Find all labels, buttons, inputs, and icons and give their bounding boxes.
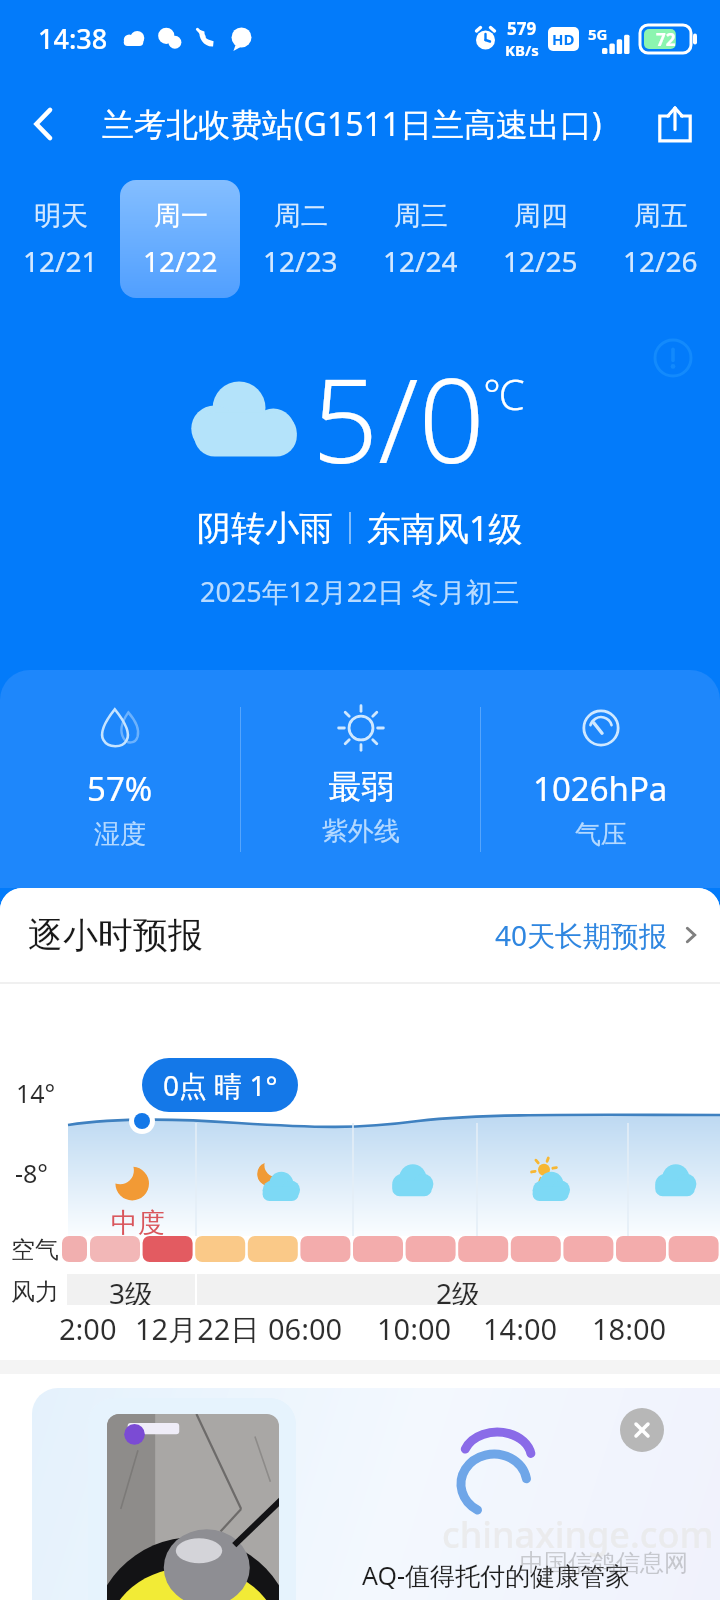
staticText: 14° bbox=[16, 1076, 56, 1110]
staticText: 东南风1级 bbox=[367, 505, 523, 551]
staticText: 明天 bbox=[34, 199, 88, 233]
staticText: 12月22日 bbox=[135, 1309, 260, 1349]
staticText: 兰考北收费站(G1511日兰高速出口) bbox=[102, 102, 602, 146]
staticText: 湿度 bbox=[94, 818, 146, 851]
staticText: 阴转小雨 bbox=[197, 507, 333, 550]
button[interactable]: Back bbox=[12, 92, 76, 156]
button[interactable]: 57% bbox=[0, 670, 240, 888]
staticText: 2级 bbox=[436, 1274, 481, 1305]
staticText: 中度 bbox=[111, 1206, 165, 1240]
button[interactable]: Share bbox=[644, 93, 706, 155]
staticText: 5/0 bbox=[312, 339, 485, 497]
button[interactable]: 周四 bbox=[480, 180, 600, 298]
button[interactable]: 周二 bbox=[240, 180, 360, 298]
staticText: 14:00 bbox=[483, 1309, 558, 1348]
staticText: 14:38 bbox=[38, 20, 108, 57]
button[interactable]: 周一 bbox=[120, 180, 240, 298]
staticText: 72 bbox=[656, 28, 676, 51]
button[interactable]: Close ad bbox=[620, 1408, 664, 1452]
staticText: 中国信鸽信息网 bbox=[520, 1548, 688, 1578]
staticText: 1026hPa bbox=[533, 766, 668, 811]
staticText: 579 bbox=[507, 17, 537, 40]
staticText: 06:00 bbox=[268, 1309, 343, 1348]
button[interactable]: 最弱 bbox=[241, 670, 480, 888]
button[interactable]: 周三 bbox=[360, 180, 480, 298]
staticText: 12/24 bbox=[383, 242, 458, 280]
staticText: chinaxinge.com bbox=[442, 1510, 714, 1559]
staticText: ℃ bbox=[483, 365, 525, 422]
staticText: 周三 bbox=[394, 199, 448, 233]
staticText: KB/s bbox=[505, 40, 539, 60]
button[interactable]: 0点 晴 1° bbox=[142, 1058, 298, 1112]
staticText: 逐小时预报 bbox=[28, 913, 203, 957]
staticText: 12/23 bbox=[263, 242, 338, 280]
staticText: 周四 bbox=[514, 199, 568, 233]
staticText: 2:00 bbox=[59, 1309, 117, 1348]
staticText: 0点 晴 1° bbox=[163, 1066, 278, 1104]
staticText: 周五 bbox=[634, 199, 688, 233]
staticText: 空气 bbox=[11, 1235, 59, 1265]
staticText: 40天长期预报 bbox=[495, 916, 668, 954]
button[interactable]: 周五 bbox=[600, 180, 720, 298]
staticText: 周二 bbox=[274, 199, 328, 233]
staticText: -8° bbox=[15, 1156, 49, 1190]
staticText: 2025年12月22日 冬月初三 bbox=[200, 573, 520, 610]
button[interactable]: 40天长期预报 bbox=[495, 916, 704, 954]
staticText: 紫外线 bbox=[322, 815, 400, 848]
staticText: 最弱 bbox=[328, 766, 394, 808]
staticText: 10:00 bbox=[377, 1309, 452, 1348]
staticText: 风力 bbox=[11, 1277, 59, 1307]
staticText: 57% bbox=[87, 766, 153, 811]
staticText: 12/26 bbox=[623, 242, 698, 280]
button[interactable]: Weather alert bbox=[649, 334, 697, 382]
staticText: 12/21 bbox=[23, 242, 98, 280]
staticText: 气压 bbox=[575, 818, 627, 851]
staticText: 12/25 bbox=[503, 242, 578, 280]
staticText: 3级 bbox=[109, 1274, 154, 1305]
staticText: 18:00 bbox=[592, 1309, 667, 1348]
button[interactable]: AQ-值得托付的健康管家 bbox=[32, 1388, 720, 1600]
button[interactable]: 1026hPa bbox=[481, 670, 720, 888]
staticText: 12/22 bbox=[143, 242, 218, 280]
staticText: 周一 bbox=[154, 199, 208, 233]
staticText: HD bbox=[552, 29, 575, 49]
staticText: AQ-值得托付的健康管家 bbox=[362, 1558, 631, 1592]
button[interactable]: 明天 bbox=[0, 180, 120, 298]
staticText: 5G bbox=[588, 24, 608, 44]
